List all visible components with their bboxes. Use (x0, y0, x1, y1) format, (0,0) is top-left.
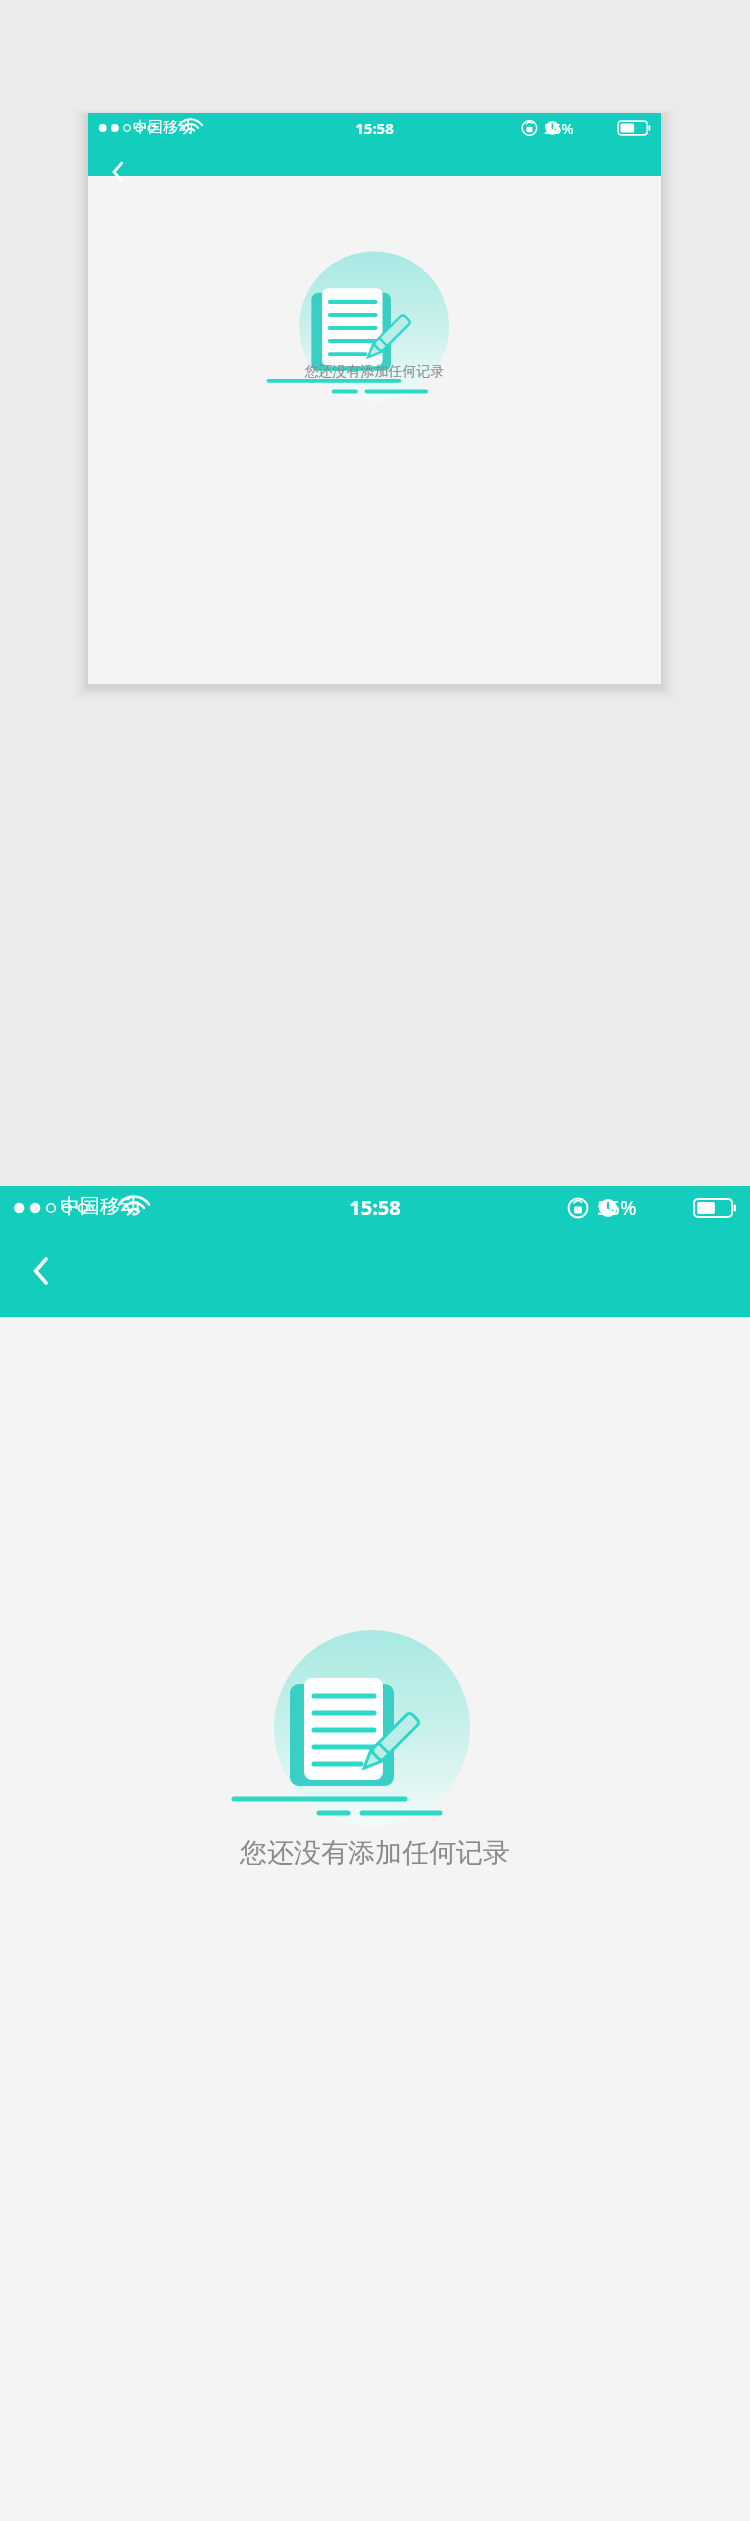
staticText: 您还没有添加任何记录 (0, 1836, 750, 1876)
staticText: 15:58 (88, 118, 661, 138)
staticText: 中国移动 (60, 1194, 140, 1219)
button[interactable]: Back (12, 1242, 70, 1300)
staticText: 您还没有添加任何记录 (88, 363, 661, 391)
staticText: 中国移动 (133, 118, 193, 137)
staticText: 56% (544, 118, 574, 138)
staticText: 15:58 (0, 1194, 750, 1221)
button[interactable]: Back (94, 148, 142, 196)
staticText: 56% (597, 1194, 637, 1221)
